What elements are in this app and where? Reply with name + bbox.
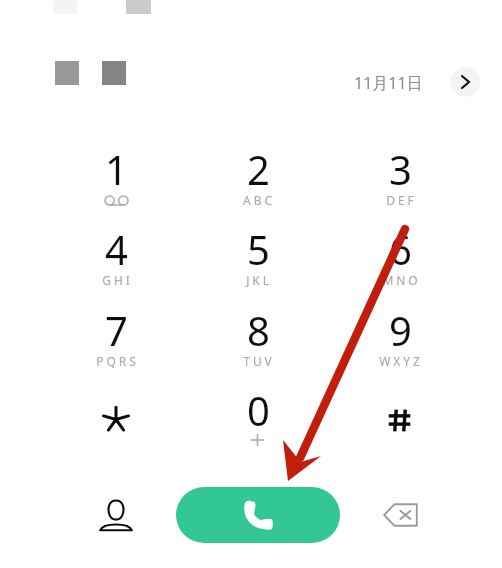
button[interactable]: 4: [69, 222, 163, 294]
staticText: 3: [389, 142, 412, 196]
staticText: WXYZ: [379, 353, 423, 369]
staticText: PQRS: [96, 353, 139, 369]
staticText: 11月11日: [354, 72, 423, 94]
button[interactable]: 9: [353, 303, 447, 375]
button[interactable]: 11月11日: [349, 67, 427, 99]
staticText: 5: [247, 222, 270, 276]
button[interactable]: Backspace: [376, 491, 424, 539]
staticText: DEF: [386, 192, 417, 208]
staticText: GHI: [102, 272, 133, 288]
button[interactable]: Call: [176, 487, 340, 543]
staticText: 8: [247, 303, 270, 357]
staticText: 7: [105, 303, 128, 357]
staticText: 9: [389, 303, 412, 357]
button[interactable]: 3: [353, 142, 447, 214]
button[interactable]: 7: [69, 303, 163, 375]
staticText: TUV: [243, 353, 275, 369]
button[interactable]: [353, 383, 447, 455]
button[interactable]: 6: [353, 222, 447, 294]
staticText: 6: [389, 222, 412, 276]
button[interactable]: Open call log: [450, 67, 480, 97]
staticText: 2: [247, 142, 270, 196]
button[interactable]: 5: [211, 222, 305, 294]
button[interactable]: Contacts: [92, 491, 140, 539]
staticText: 0: [247, 383, 270, 437]
button[interactable]: 8: [211, 303, 305, 375]
button[interactable]: 1: [69, 142, 163, 214]
button[interactable]: 2: [211, 142, 305, 214]
staticText: 4: [105, 222, 128, 276]
staticText: JKL: [246, 272, 272, 288]
button[interactable]: 0: [211, 383, 305, 455]
staticText: ABC: [243, 192, 275, 208]
staticText: MNO: [382, 272, 421, 288]
staticText: 1: [105, 142, 128, 196]
button[interactable]: [69, 383, 163, 455]
